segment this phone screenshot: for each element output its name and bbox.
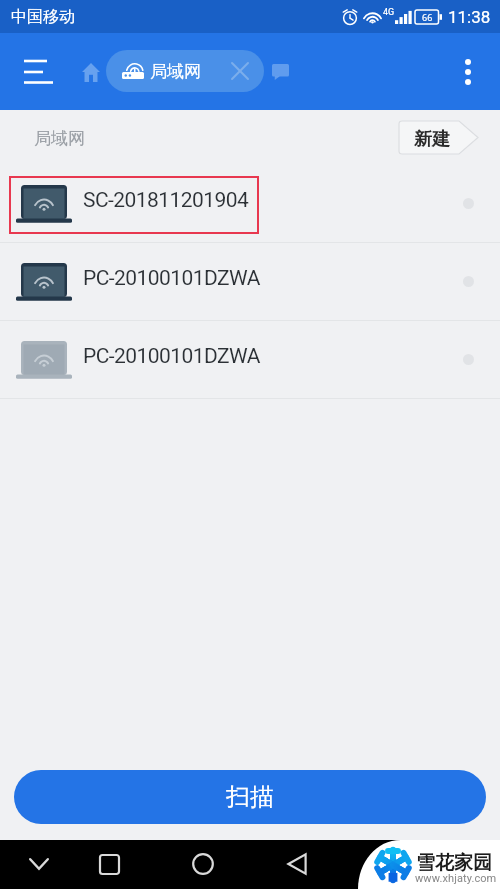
staticText: 局域网 bbox=[34, 128, 85, 149]
staticText: 11:38 bbox=[448, 7, 491, 27]
button[interactable]: Menu bbox=[14, 48, 62, 96]
staticText: 66 bbox=[422, 11, 433, 23]
staticText: 局域网 bbox=[150, 61, 201, 82]
staticText: PC-20100101DZWA bbox=[83, 266, 260, 291]
button[interactable]: Home bbox=[180, 841, 226, 887]
button[interactable]: 新建 bbox=[399, 121, 478, 154]
button[interactable]: Messages bbox=[264, 56, 296, 88]
staticText: www.xhjaty.com bbox=[415, 872, 497, 885]
button[interactable]: More options bbox=[445, 49, 491, 95]
staticText: 扫描 bbox=[226, 782, 274, 812]
staticText: SC-201811201904 bbox=[83, 188, 249, 213]
button[interactable]: PC-20100101DZWA bbox=[0, 243, 500, 320]
button[interactable]: PC-20100101DZWA bbox=[0, 321, 500, 398]
staticText: 雪花家园 bbox=[416, 851, 492, 875]
staticText: PC-20100101DZWA bbox=[83, 344, 260, 369]
staticText: 中国移动 bbox=[11, 7, 75, 27]
button[interactable]: 扫描 bbox=[14, 770, 486, 824]
button[interactable]: SC-201811201904 bbox=[0, 165, 500, 242]
button[interactable]: Recents bbox=[86, 841, 132, 887]
button[interactable]: Back bbox=[274, 841, 320, 887]
staticText: 4G bbox=[383, 7, 395, 18]
staticText: 新建 bbox=[414, 128, 450, 151]
button[interactable]: 局域网 bbox=[106, 50, 264, 92]
button[interactable]: Hide keyboard bbox=[16, 841, 62, 887]
button[interactable]: Home bbox=[73, 54, 109, 90]
